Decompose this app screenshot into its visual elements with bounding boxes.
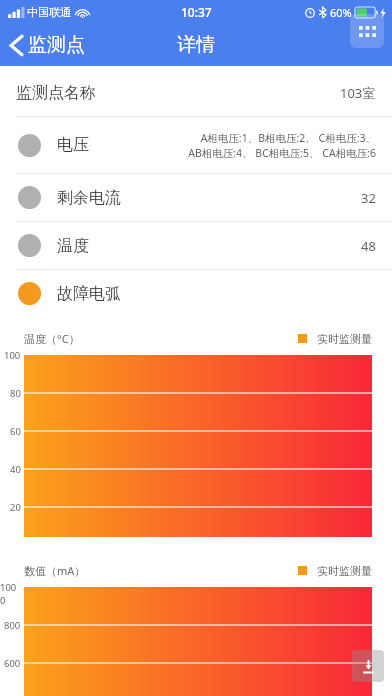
- staticText: 103室: [340, 84, 376, 102]
- button[interactable]: Apps: [350, 14, 384, 48]
- staticText: 1000: [0, 581, 21, 607]
- staticText: 10:37: [181, 4, 212, 20]
- staticText: 48: [361, 237, 376, 255]
- staticText: 故障电弧: [57, 284, 121, 304]
- staticText: 60: [10, 425, 21, 438]
- button[interactable]: 监测点: [0, 27, 97, 63]
- staticText: 温度: [57, 236, 89, 256]
- staticText: 实时监测量: [317, 564, 372, 578]
- staticText: 600: [4, 657, 21, 670]
- staticText: 剩余电流: [57, 188, 121, 208]
- staticText: 详情: [177, 33, 215, 57]
- staticText: 中国联通: [27, 5, 71, 19]
- button[interactable]: 剩余电流: [0, 174, 392, 221]
- button[interactable]: Download: [352, 650, 384, 682]
- staticText: 100: [4, 349, 21, 362]
- staticText: 40: [10, 463, 21, 476]
- staticText: 数值（mA）: [24, 563, 86, 578]
- staticText: 32: [361, 189, 376, 207]
- staticText: 60%: [330, 5, 352, 20]
- button[interactable]: 电压: [0, 117, 392, 173]
- button[interactable]: 故障电弧: [0, 270, 392, 317]
- staticText: 电压: [57, 135, 89, 155]
- staticText: 80: [10, 387, 21, 400]
- staticText: 20: [10, 501, 21, 514]
- button[interactable]: 温度: [0, 222, 392, 269]
- staticText: 监测点名称: [16, 83, 96, 103]
- staticText: A相电压:1、B相电压:2、 C相电压:3、 AB相电压:4、 BC相电压:5、…: [188, 131, 376, 160]
- staticText: 实时监测量: [317, 332, 372, 346]
- staticText: 监测点: [28, 33, 85, 57]
- staticText: 800: [4, 619, 21, 632]
- staticText: 温度（°C）: [24, 331, 80, 346]
- button[interactable]: 监测点名称: [0, 70, 392, 116]
